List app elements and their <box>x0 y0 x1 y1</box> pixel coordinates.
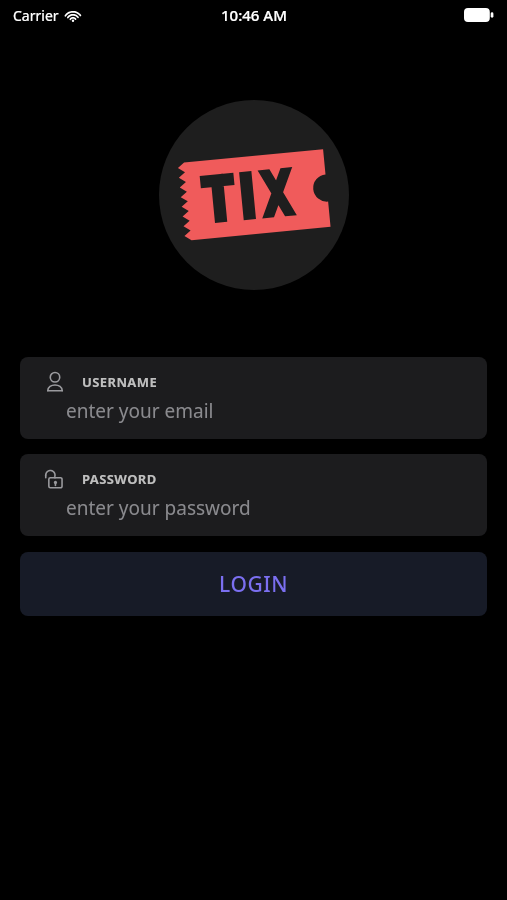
staticText: 10:46 AM <box>221 5 287 25</box>
staticText: LOGIN <box>219 570 289 599</box>
staticText: PASSWORD <box>82 470 157 488</box>
staticText: enter your password <box>66 495 251 521</box>
button[interactable]: LOGIN <box>20 552 487 616</box>
button[interactable]: PASSWORD <box>20 454 487 536</box>
button[interactable]: USERNAME <box>20 357 487 439</box>
staticText: USERNAME <box>82 373 158 391</box>
staticText: enter your email <box>66 398 214 424</box>
staticText: Carrier <box>13 6 59 25</box>
